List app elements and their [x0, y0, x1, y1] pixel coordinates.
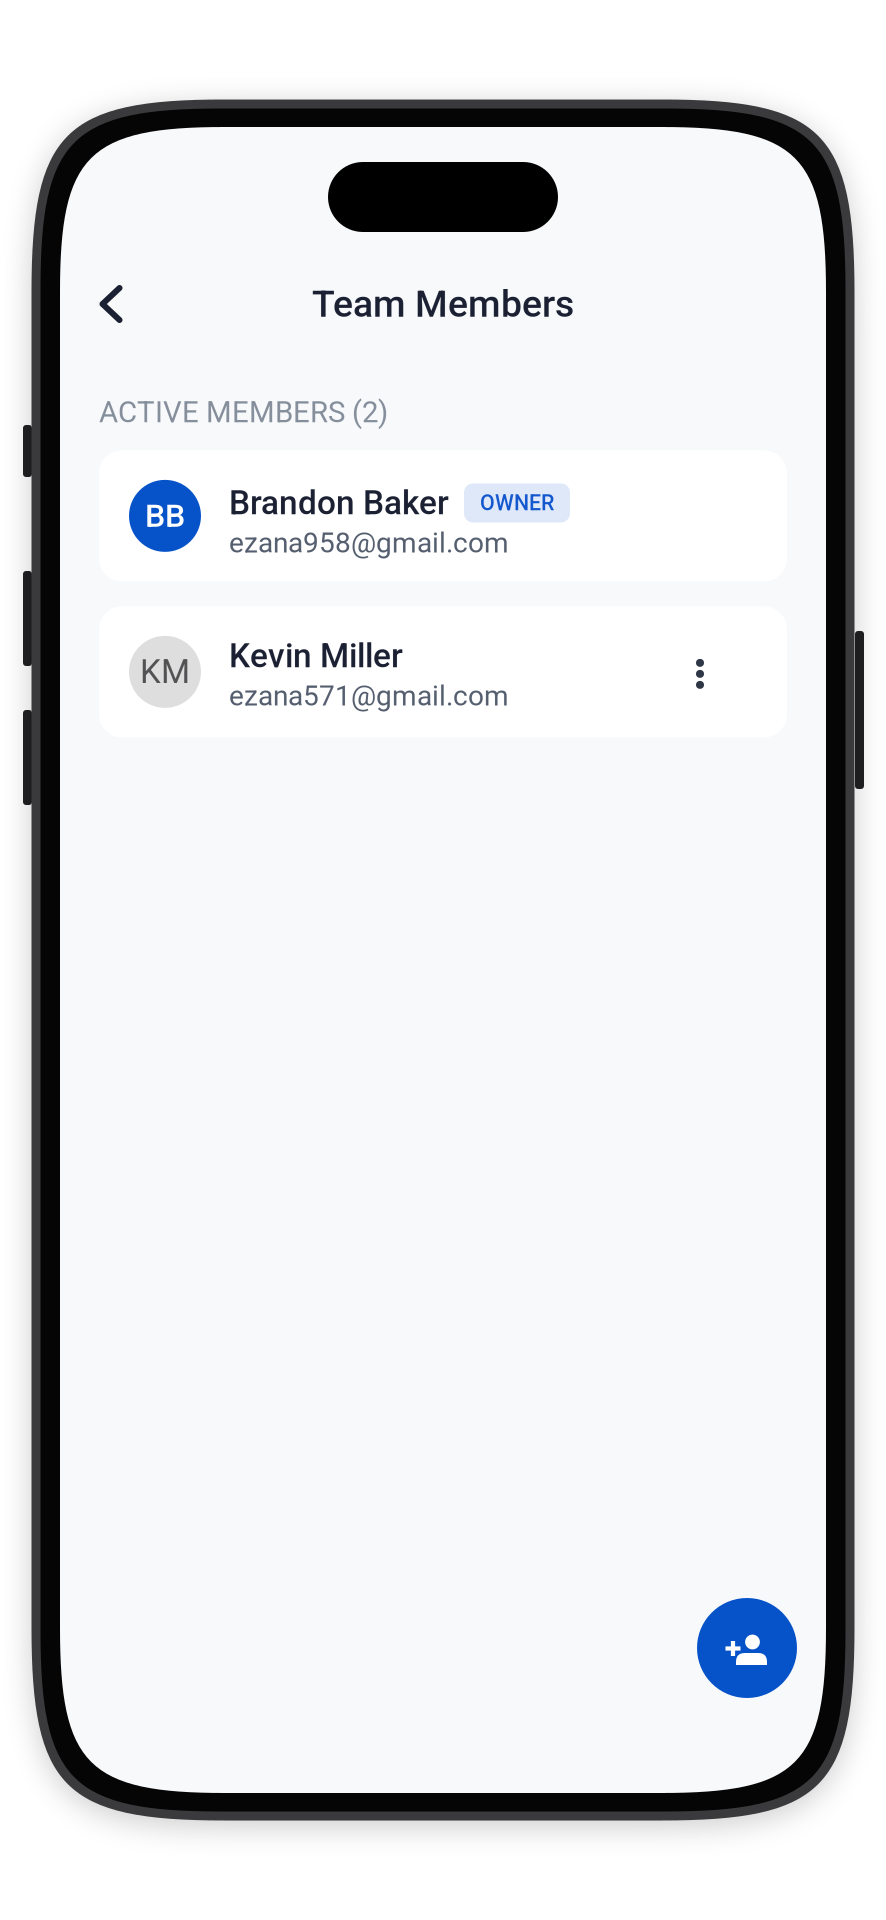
staticText: Brandon Baker [229, 483, 449, 522]
button[interactable]: Back [81, 274, 141, 334]
staticText: ezana571@gmail.com [229, 679, 509, 712]
staticText: BB [145, 497, 185, 535]
staticText: Kevin Miller [229, 636, 403, 675]
staticText: KM [140, 652, 190, 691]
button[interactable]: More options for Kevin Miller [671, 606, 729, 737]
button[interactable]: KM [99, 606, 787, 737]
staticText: ezana958@gmail.com [229, 526, 509, 559]
staticText: ACTIVE MEMBERS (2) [99, 395, 388, 429]
staticText: Team Members [312, 282, 574, 326]
staticText: OWNER [480, 490, 554, 515]
button[interactable]: Add member [697, 1598, 797, 1698]
button[interactable]: BB [99, 450, 787, 581]
